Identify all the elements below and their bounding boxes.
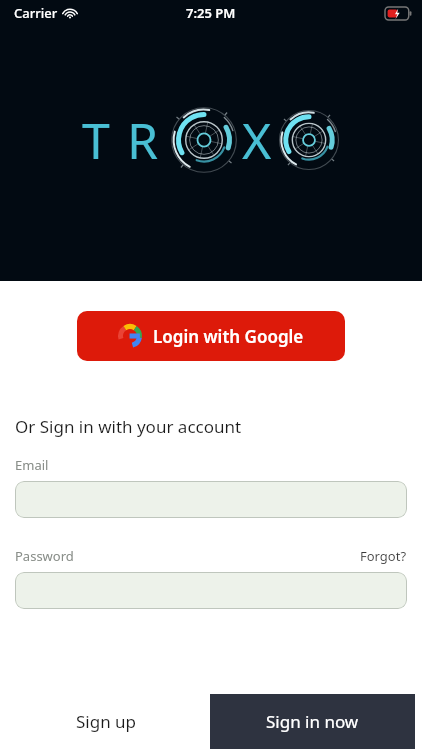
- button[interactable]: Login with Google: [77, 311, 345, 361]
- button[interactable]: [15, 572, 407, 609]
- button[interactable]: Sign up: [62, 702, 151, 741]
- staticText: Or Sign in with your account: [15, 415, 242, 438]
- staticText: 7:25 PM: [186, 4, 236, 22]
- button[interactable]: Forgot?: [360, 547, 407, 565]
- button[interactable]: [15, 481, 407, 518]
- staticText: Forgot?: [360, 547, 407, 565]
- staticText: Email: [15, 456, 49, 474]
- staticText: Password: [15, 547, 74, 565]
- staticText: Sign up: [76, 710, 137, 733]
- staticText: Login with Google: [153, 325, 304, 348]
- button[interactable]: Sign in now: [210, 694, 415, 749]
- staticText: Carrier: [14, 4, 58, 22]
- staticText: X: [242, 106, 272, 174]
- staticText: T: [82, 106, 110, 174]
- staticText: Sign in now: [266, 710, 359, 733]
- staticText: R: [127, 106, 159, 174]
